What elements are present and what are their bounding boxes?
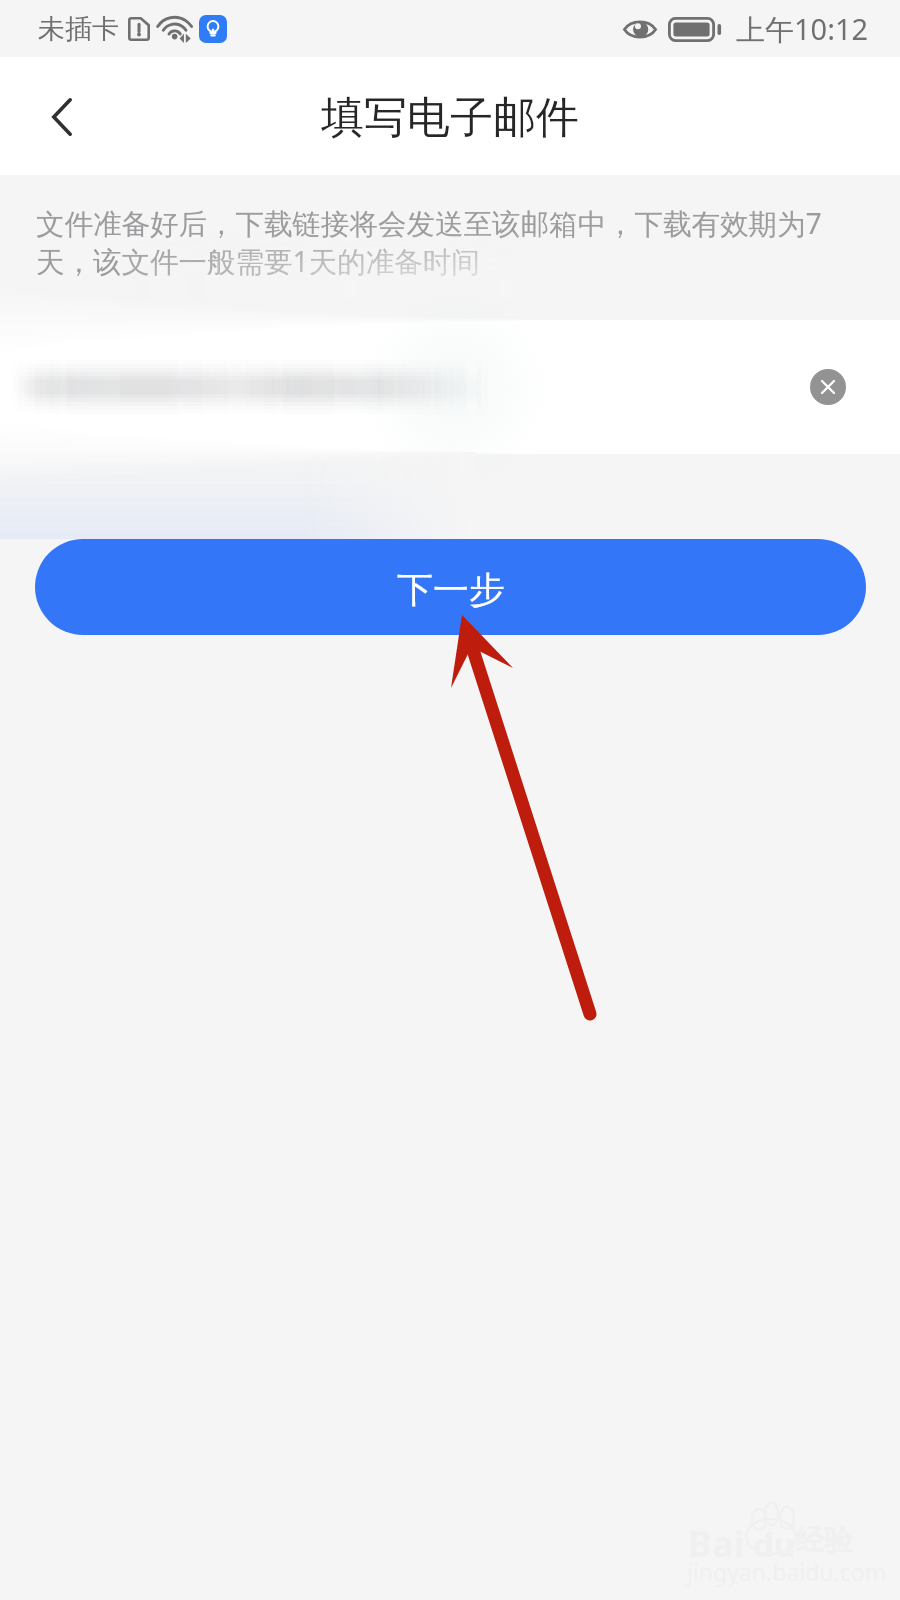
button[interactable]: Clear text <box>0 250 900 530</box>
button[interactable]: Back <box>0 57 110 175</box>
staticText: 上午10:12 <box>736 9 869 49</box>
button[interactable]: 下一步 <box>35 539 866 635</box>
staticText: 下一步 <box>397 567 505 612</box>
staticText: 文件准备好后，下载链接将会发送至该邮箱中，下载有效期为7 天，该文件一般需要1天… <box>36 204 866 281</box>
button[interactable]: Clear text <box>810 369 846 405</box>
staticText: 填写电子邮件 <box>321 91 579 145</box>
staticText: 未插卡 <box>38 12 119 46</box>
